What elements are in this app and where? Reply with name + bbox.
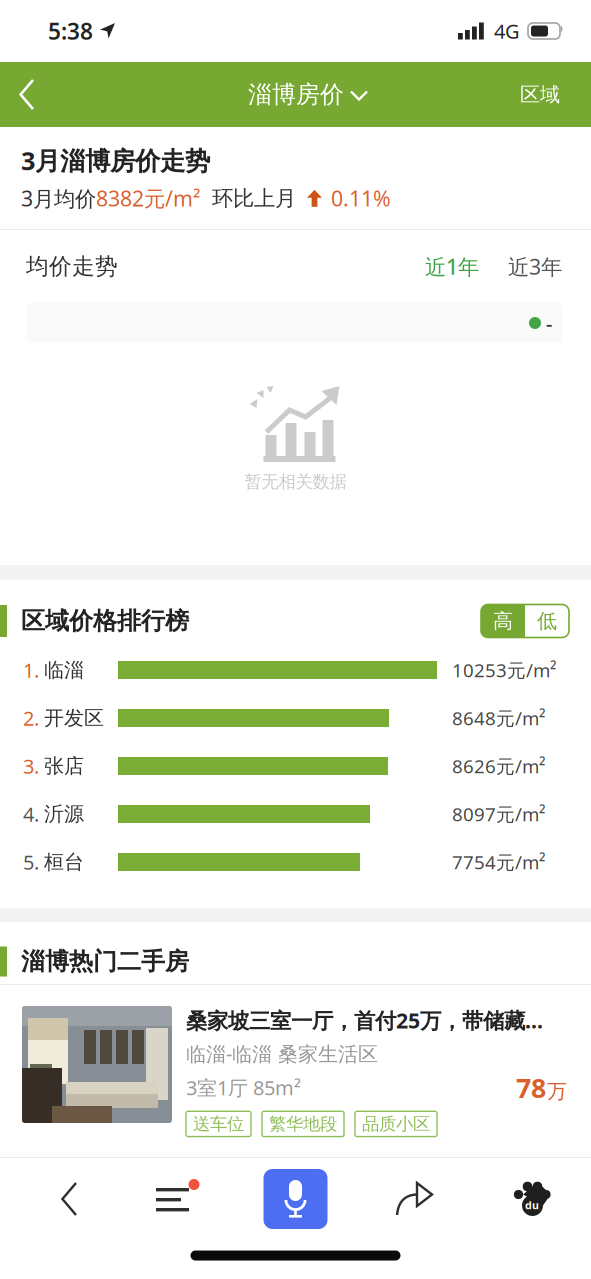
staticText: 品质小区 — [362, 1113, 430, 1135]
staticText: 7754元/m² — [452, 850, 546, 874]
staticText: 78 — [516, 1070, 546, 1105]
button[interactable]: Baidu home — [473, 1158, 591, 1240]
staticText: 淄博房价 — [248, 80, 344, 109]
staticText: 2. — [23, 705, 39, 731]
staticText: 临淄 — [44, 658, 84, 682]
button[interactable]: 淄博房价 — [248, 80, 367, 109]
button[interactable]: Voice search — [236, 1158, 355, 1240]
staticText: 8648元/m² — [452, 706, 546, 730]
staticText: 3月均价 — [21, 184, 96, 212]
staticText: 5:38 — [48, 16, 93, 46]
staticText: 高 — [493, 609, 513, 633]
staticText: 繁华地段 — [269, 1113, 337, 1135]
button[interactable]: Back — [0, 1158, 118, 1240]
staticText: 万 — [547, 1079, 567, 1104]
staticText: 桓台 — [44, 850, 84, 874]
staticText: 近1年 — [425, 252, 479, 281]
staticText: 均价走势 — [26, 253, 118, 280]
button[interactable]: Menu — [118, 1158, 236, 1240]
staticText: 3月淄博房价走势 — [21, 143, 210, 177]
staticText: 10253元/m² — [452, 658, 557, 682]
staticText: 临淄-临淄 桑家生活区 — [186, 1040, 378, 1067]
staticText: 暂无相关数据 — [244, 471, 346, 492]
button[interactable]: 高 — [481, 604, 569, 637]
button[interactable]: 近1年 — [425, 252, 479, 281]
staticText: 3室1厅 85m² — [186, 1074, 301, 1101]
staticText: - — [541, 310, 552, 336]
staticText: 桑家坡三室一厅，首付25万，带储藏... — [186, 1006, 543, 1034]
staticText: 4G — [494, 18, 520, 44]
staticText: 沂源 — [44, 802, 84, 826]
staticText: 区域价格排行榜 — [21, 606, 189, 636]
staticText: 5. — [23, 849, 39, 875]
staticText: 开发区 — [44, 706, 104, 730]
staticText: 8382元/m² — [96, 184, 200, 212]
staticText: 8626元/m² — [452, 754, 546, 778]
staticText: 环比上月 — [200, 185, 296, 211]
button[interactable]: 近3年 — [479, 252, 562, 281]
staticText: 0.11% — [331, 184, 391, 212]
staticText: 4. — [23, 801, 39, 827]
button[interactable]: Back — [0, 80, 57, 109]
button[interactable]: 区域 — [520, 82, 591, 107]
staticText: 低 — [537, 609, 557, 633]
staticText: 送车位 — [193, 1113, 244, 1135]
staticText: 淄博热门二手房 — [21, 947, 189, 976]
staticText: du — [525, 1198, 539, 1212]
button[interactable]: Share — [355, 1158, 473, 1240]
staticText: 1. — [23, 657, 39, 683]
staticText: 3. — [23, 753, 39, 779]
staticText: 8097元/m² — [452, 802, 546, 826]
staticText: 区域 — [520, 82, 560, 107]
staticText: 张店 — [44, 754, 84, 778]
button[interactable]: 桑家坡三室一厅，首付25万，带储藏... — [0, 985, 591, 1137]
staticText: 近3年 — [508, 252, 562, 281]
